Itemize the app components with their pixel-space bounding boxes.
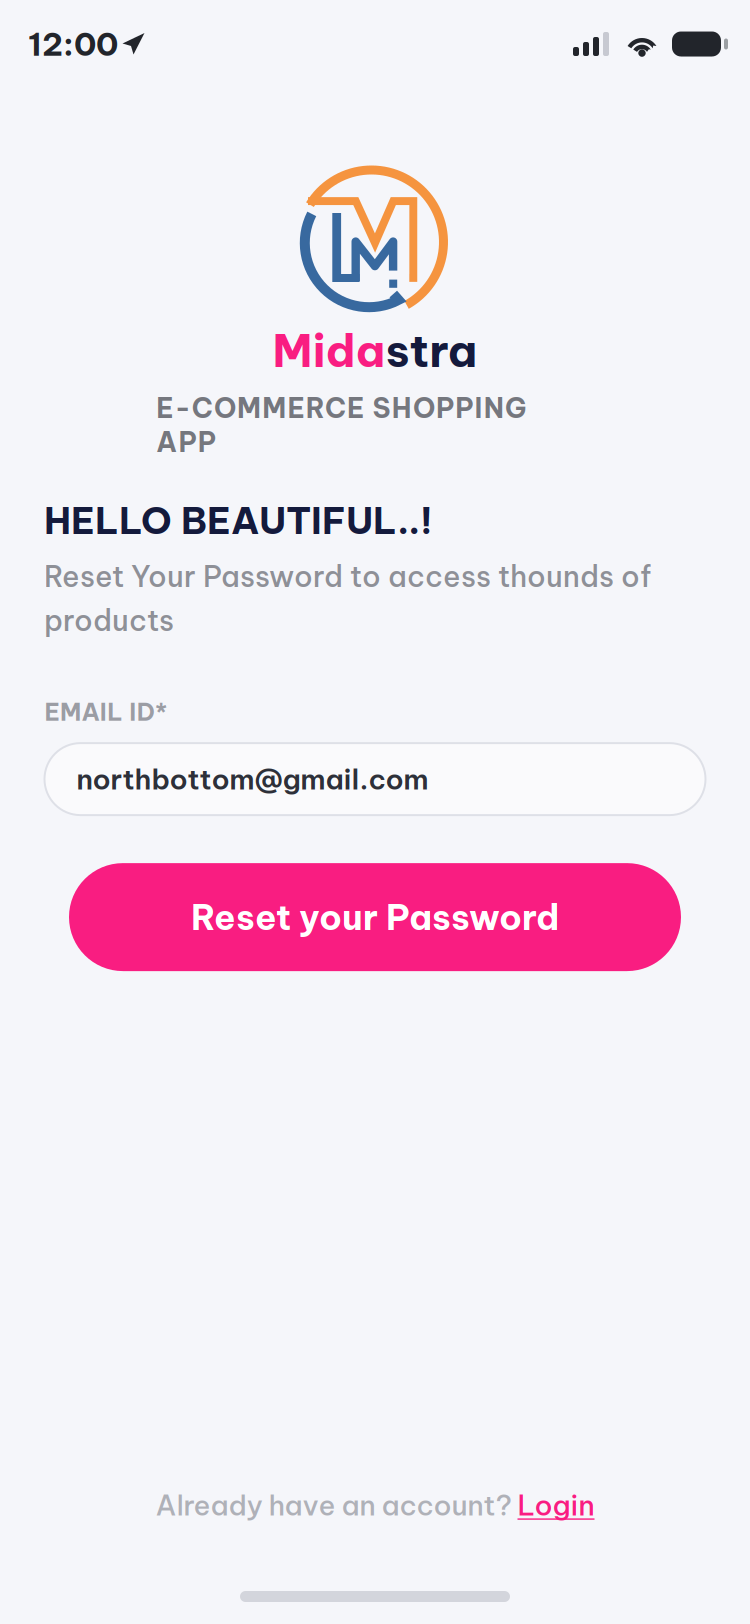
staticText: EMAIL ID* [44, 697, 167, 727]
staticText: Reset your Password [191, 895, 559, 939]
button[interactable]: Reset your Password [69, 863, 681, 971]
staticText: HELLO BEAUTIFUL..! [44, 497, 433, 544]
staticText: Mida [272, 322, 385, 379]
staticText: Reset Your Password to access thounds of… [44, 558, 651, 639]
staticText: northbottom@gmail.com [76, 761, 428, 797]
staticText: Login [517, 1488, 594, 1523]
staticText: Already have an account? [155, 1488, 517, 1523]
staticText: stra [385, 322, 477, 379]
button[interactable]: Already have an account? [155, 1488, 594, 1523]
staticText: 12:00 [28, 24, 118, 64]
staticText: E-COMMERCE SHOPPING APP [156, 391, 594, 425]
